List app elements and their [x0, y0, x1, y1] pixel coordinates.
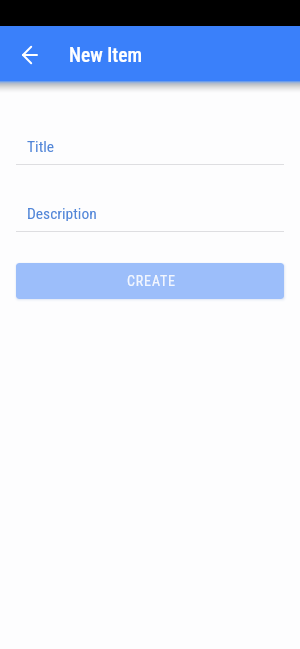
staticText: CREATE — [127, 273, 176, 289]
staticText: New Item — [69, 44, 143, 67]
staticText: Description — [27, 205, 97, 221]
button[interactable]: CREATE — [16, 263, 284, 299]
button[interactable]: Back — [9, 34, 49, 74]
staticText: Title — [27, 138, 55, 154]
